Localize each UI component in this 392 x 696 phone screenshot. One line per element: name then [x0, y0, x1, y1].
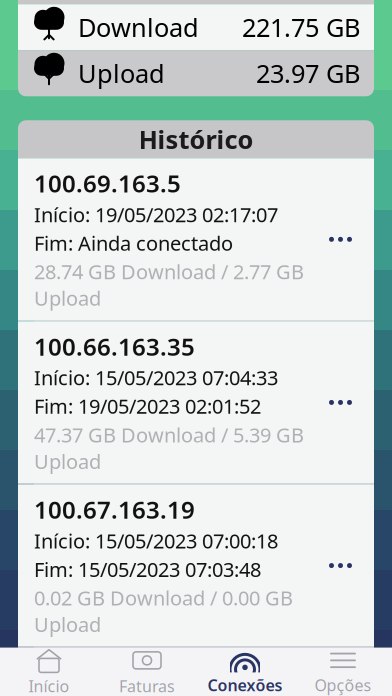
staticText: Início: 19/05/2023 02:17:07: [34, 201, 278, 228]
button[interactable]: Faturas: [98, 643, 196, 696]
staticText: Início: 15/05/2023 07:04:33: [34, 364, 278, 391]
button[interactable]: Conexões: [196, 644, 294, 696]
staticText: Opções: [314, 674, 371, 696]
staticText: Faturas: [119, 675, 175, 696]
staticText: 221.75 GB: [242, 10, 360, 44]
staticText: Início: 15/05/2023 07:00:18: [34, 527, 278, 554]
staticText: 28.74 GB Download / 2.77 GB Upload: [34, 258, 304, 311]
staticText: Conexões: [207, 674, 282, 696]
staticText: 0.02 GB Download / 0.00 GB Upload: [34, 584, 293, 638]
staticText: 100.69.163.5: [34, 167, 181, 199]
button[interactable]: Opções: [294, 644, 392, 696]
staticText: Upload: [78, 56, 165, 90]
staticText: Início: 15/05/2023 06:58:07: [34, 690, 278, 696]
staticText: Download: [78, 10, 199, 44]
staticText: 100.66.163.35: [34, 330, 195, 362]
button[interactable]: 100.67.163.19: [18, 484, 374, 647]
staticText: Início: [28, 675, 69, 696]
staticText: Fim: 19/05/2023 02:01:52: [34, 393, 261, 419]
staticText: Fim: 15/05/2023 07:03:48: [34, 556, 261, 582]
staticText: Fim: Ainda conectado: [34, 230, 233, 256]
staticText: 100.67.163.19: [34, 493, 195, 525]
staticText: Histórico: [138, 122, 253, 156]
staticText: 47.37 GB Download / 5.39 GB Upload: [34, 421, 304, 474]
button[interactable]: Início: [0, 643, 98, 696]
staticText: 23.97 GB: [256, 56, 360, 90]
staticText: 100.67.163.57: [34, 657, 195, 688]
button[interactable]: 100.69.163.5: [18, 158, 374, 320]
button[interactable]: 100.67.163.57: [18, 648, 374, 696]
button[interactable]: 100.66.163.35: [18, 321, 374, 483]
